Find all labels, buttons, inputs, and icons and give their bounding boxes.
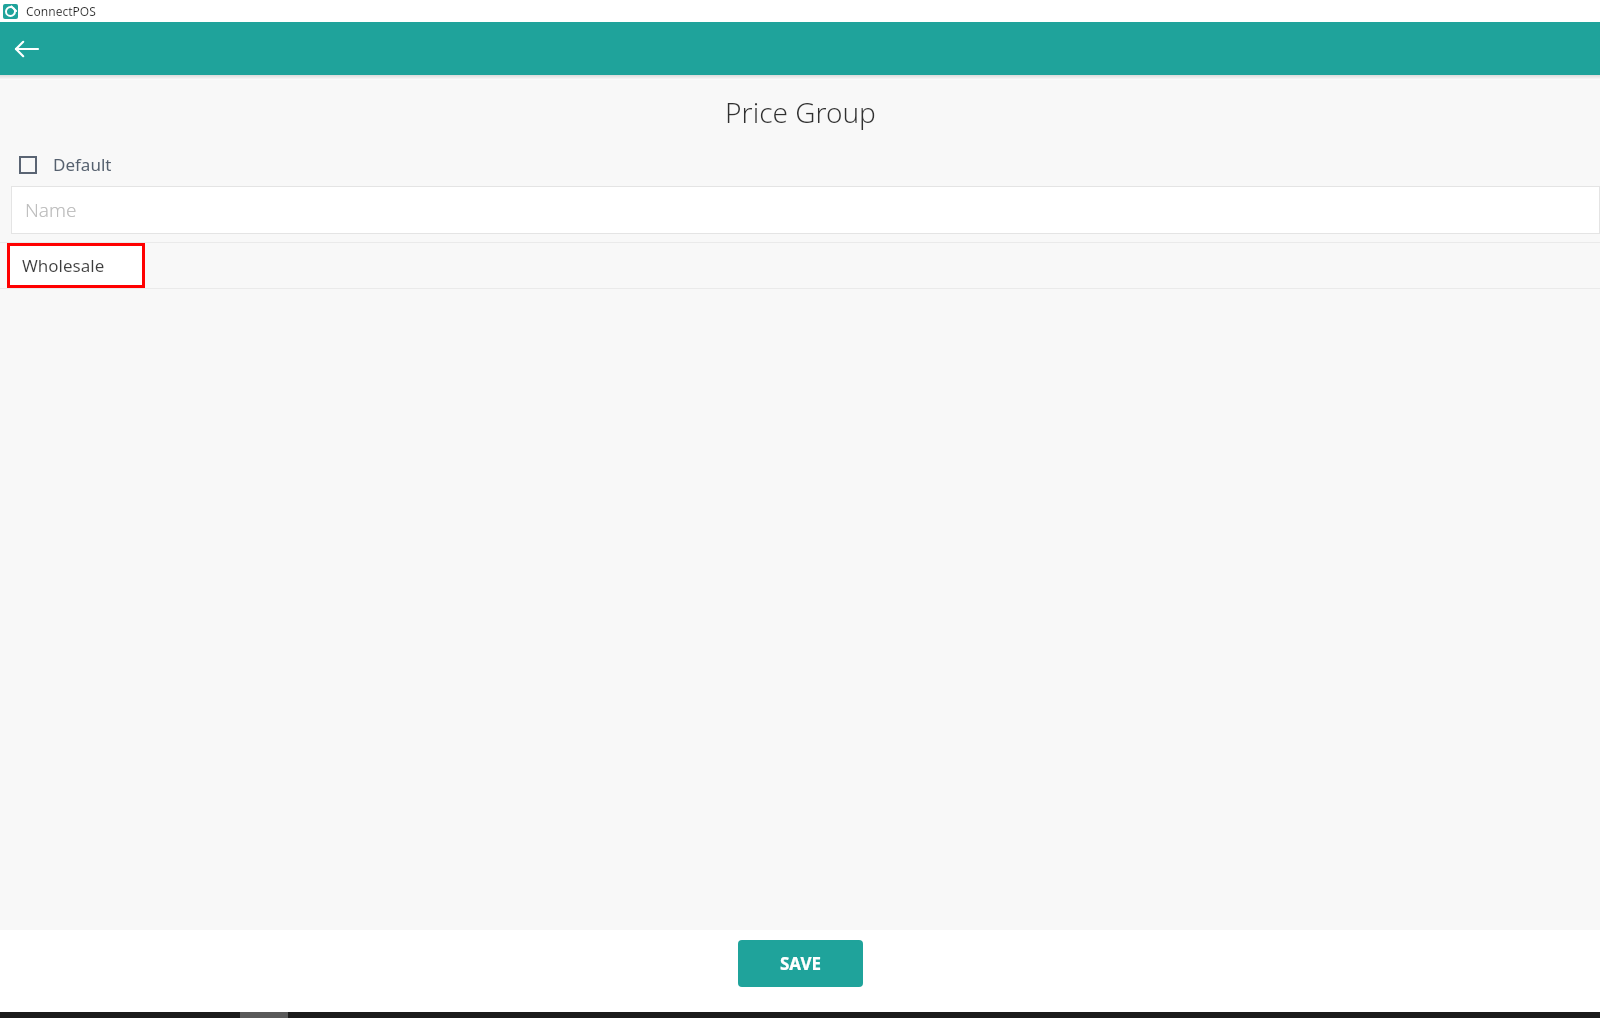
- button[interactable]: Default: [0, 143, 112, 186]
- staticText: Name: [25, 197, 77, 223]
- staticText: SAVE: [780, 952, 822, 975]
- staticText: ConnectPOS: [26, 3, 96, 19]
- button[interactable]: SAVE: [738, 940, 863, 987]
- button[interactable]: Wholesale: [10, 246, 142, 285]
- staticText: Price Group: [725, 93, 876, 131]
- button[interactable]: Name: [11, 186, 1600, 234]
- staticText: Wholesale: [22, 254, 105, 277]
- staticText: Default: [53, 153, 112, 176]
- button[interactable]: Back: [8, 30, 46, 68]
